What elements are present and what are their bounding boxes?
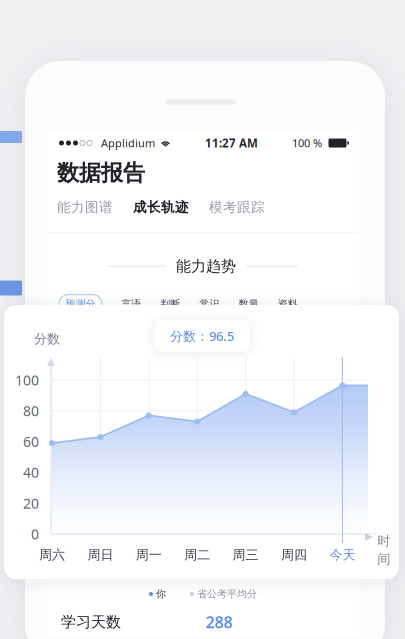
staticText: 判断: [160, 298, 180, 310]
button[interactable]: 数量: [239, 295, 259, 313]
staticText: 60: [23, 432, 39, 451]
staticText: 100 %: [292, 135, 322, 150]
staticText: 能力趋势: [176, 257, 236, 276]
staticText: Applidium: [101, 135, 155, 150]
staticText: 100: [15, 370, 39, 390]
staticText: 模考跟踪: [209, 199, 265, 216]
button[interactable]: 资料: [278, 295, 298, 313]
staticText: 周一: [136, 547, 162, 563]
staticText: 预测分: [65, 298, 95, 310]
staticText: 分数: [34, 331, 60, 347]
staticText: 你: [156, 588, 166, 600]
button[interactable]: 预测分: [59, 295, 102, 313]
staticText: 288: [205, 611, 232, 633]
staticText: 成长轨迹: [133, 199, 189, 216]
staticText: 20: [23, 494, 39, 513]
staticText: 数据报告: [57, 159, 145, 187]
staticText: 0: [31, 524, 39, 544]
button[interactable]: 常识: [199, 295, 219, 313]
staticText: 分数：96.5: [170, 327, 234, 345]
staticText: 周日: [87, 547, 113, 563]
staticText: 言语: [121, 298, 141, 310]
staticText: 时: [377, 533, 390, 549]
staticText: 周六: [39, 547, 65, 563]
button[interactable]: 能力图谱: [57, 196, 113, 219]
staticText: 资料: [278, 298, 298, 310]
staticText: 间: [377, 551, 390, 567]
staticText: 数量: [239, 298, 259, 310]
button[interactable]: 成长轨迹: [133, 196, 189, 219]
staticText: 今天: [329, 547, 355, 563]
staticText: 80: [23, 401, 39, 420]
staticText: 11:27 AM: [205, 135, 258, 151]
button[interactable]: 判断: [160, 295, 180, 313]
staticText: 周三: [233, 547, 259, 563]
staticText: 能力图谱: [57, 199, 113, 216]
button[interactable]: 言语: [121, 295, 141, 313]
staticText: 省公考平均分: [197, 588, 257, 600]
staticText: 学习天数: [61, 613, 121, 631]
staticText: 周四: [281, 547, 307, 563]
staticText: 周二: [184, 547, 210, 563]
staticText: 40: [23, 463, 39, 482]
button[interactable]: 模考跟踪: [209, 196, 265, 219]
staticText: 常识: [199, 298, 219, 310]
